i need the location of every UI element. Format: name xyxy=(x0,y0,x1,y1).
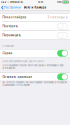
button[interactable]: Перемешать xyxy=(0,31,70,40)
staticText: Повторять xyxy=(2,25,18,28)
staticText: Настройки xyxy=(4,6,21,9)
staticText: АЛЬБОМЫ xyxy=(2,45,14,47)
staticText: Серии xyxy=(2,51,12,55)
staticText: HDR объединяет лучшие части трёх разных … xyxy=(2,64,63,70)
staticText: HDR (РАСШИРЕННЫЙ ДИАПАЗОН) xyxy=(2,60,44,63)
button[interactable]: Показ слайдов xyxy=(0,13,70,22)
staticText: 16:04 xyxy=(38,1,43,3)
button[interactable]: Серии xyxy=(0,49,70,57)
staticText: Фото и Камера xyxy=(23,6,46,9)
staticText: Вы можете сохранить обычный вариант эксп… xyxy=(2,81,66,87)
staticText: Перемешать xyxy=(2,34,21,37)
staticText: 100% xyxy=(57,1,62,3)
staticText: Показ слайдов xyxy=(2,16,26,19)
staticText: 3 секунды xyxy=(48,16,65,19)
staticText: Оставить оригинал xyxy=(2,75,32,79)
staticText: МегаФон 3G xyxy=(9,1,23,3)
button[interactable]: Оставить оригинал xyxy=(0,73,70,81)
button[interactable]: Настройки xyxy=(0,4,22,11)
button[interactable]: Повторять xyxy=(0,22,70,31)
